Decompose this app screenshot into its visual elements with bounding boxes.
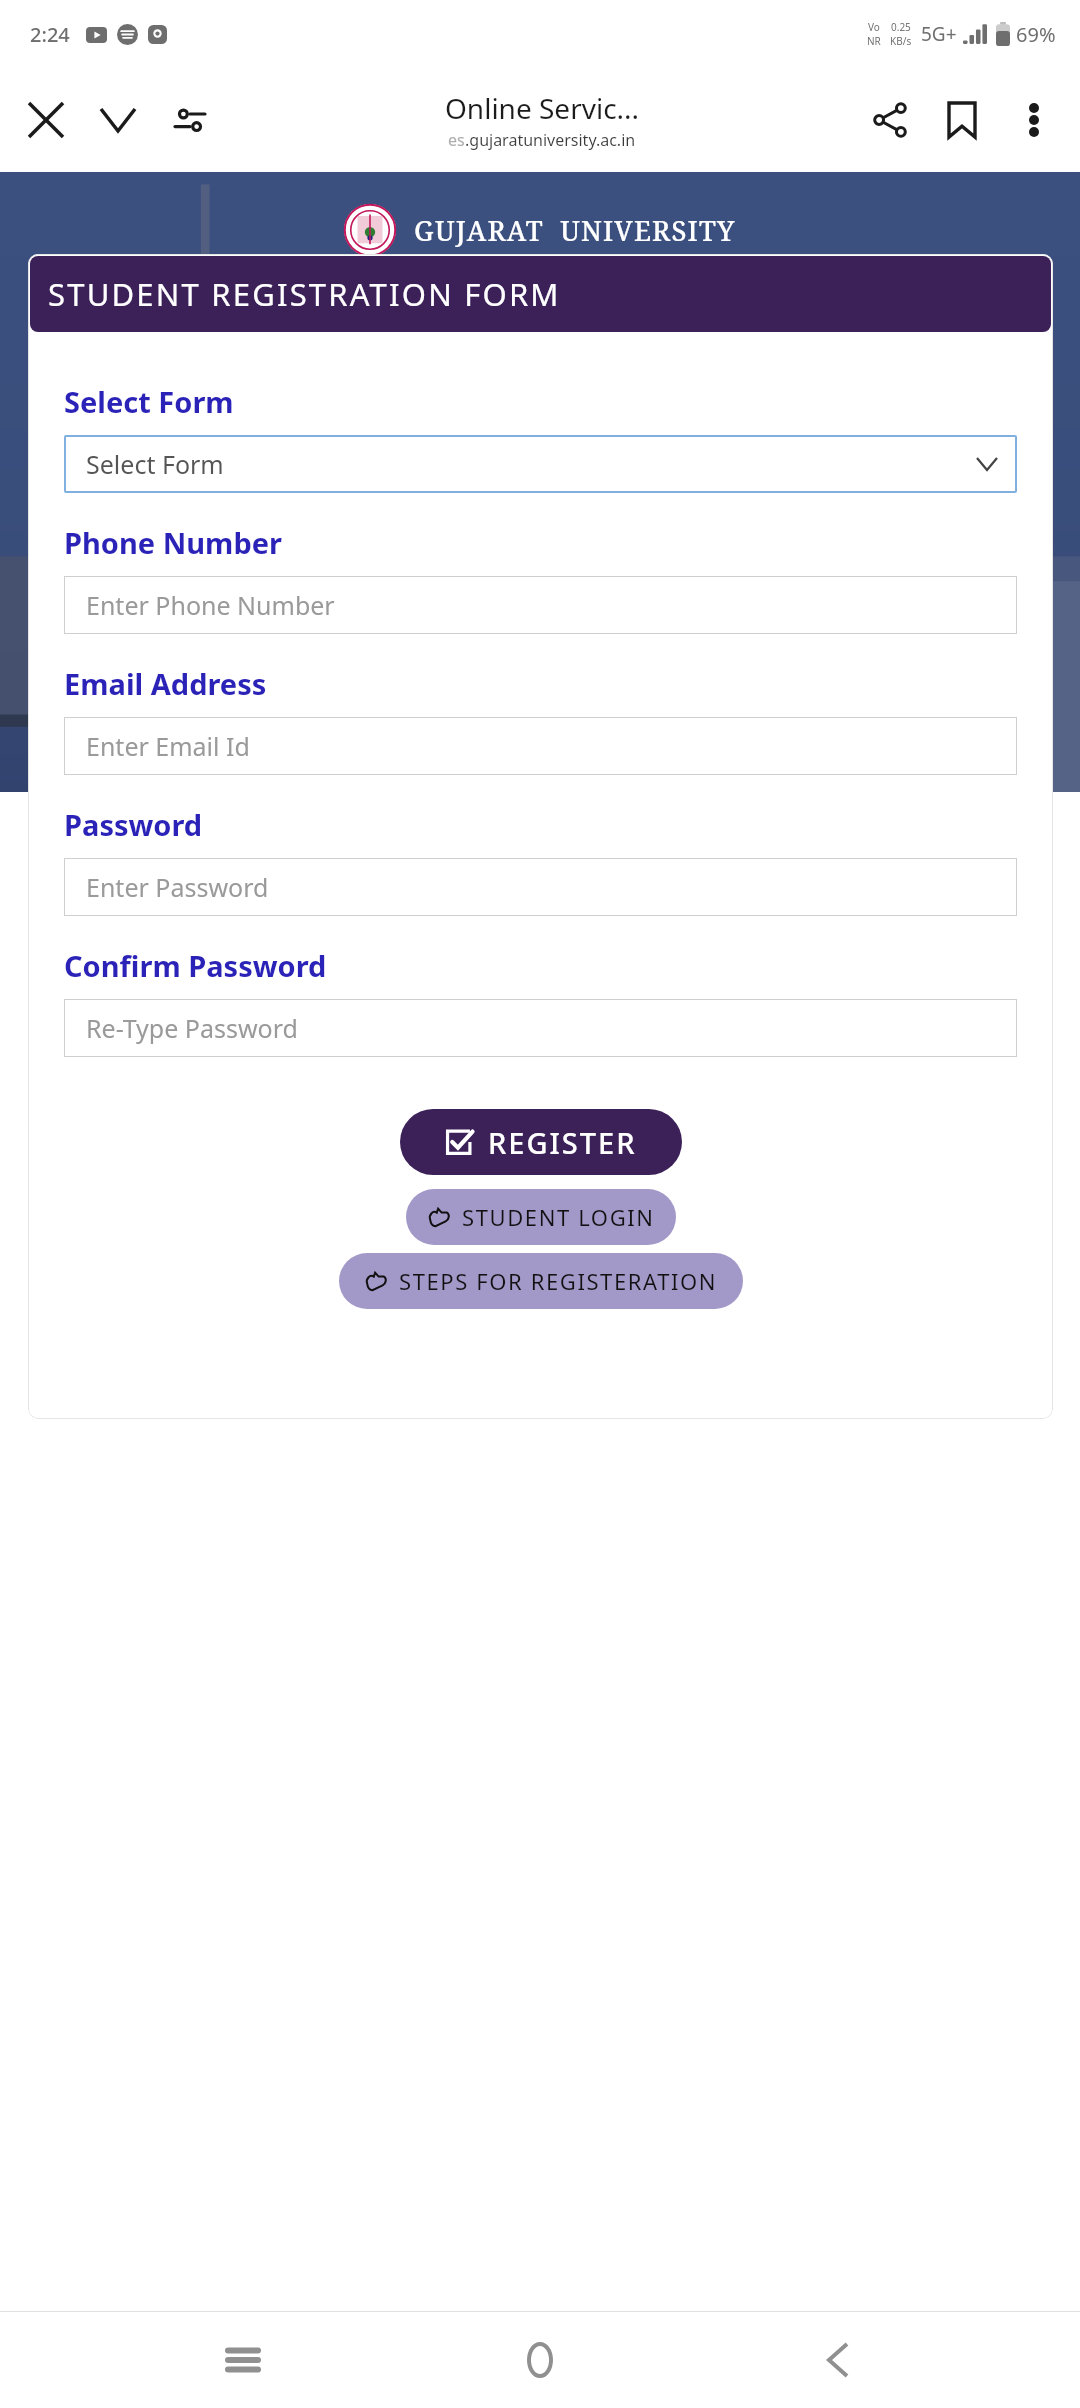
button[interactable]: Site settings bbox=[154, 75, 226, 165]
button[interactable]: STEPS FOR REGISTERATION bbox=[339, 1253, 743, 1309]
button[interactable]: STUDENT LOGIN bbox=[406, 1189, 676, 1245]
button[interactable]: Share bbox=[854, 75, 926, 165]
button[interactable]: Collapse bbox=[82, 75, 154, 165]
staticText: STUDENT REGISTRATION FORM bbox=[48, 273, 561, 315]
staticText: STUDENT LOGIN bbox=[462, 1202, 655, 1232]
button[interactable]: More options bbox=[998, 75, 1070, 165]
button[interactable]: Recent apps bbox=[188, 2312, 298, 2408]
staticText: Re-Type Password bbox=[86, 1011, 298, 1045]
staticText: NR bbox=[867, 34, 881, 48]
staticText: Enter Password bbox=[86, 870, 269, 904]
staticText: Password bbox=[64, 805, 203, 844]
staticText: Online Servic... bbox=[445, 89, 640, 127]
staticText: REGISTER bbox=[488, 1123, 637, 1162]
button[interactable]: Home bbox=[485, 2312, 595, 2408]
button[interactable]: Enter Password bbox=[64, 858, 1017, 916]
staticText: Confirm Password bbox=[64, 946, 327, 985]
button[interactable]: Enter Email Id bbox=[64, 717, 1017, 775]
staticText: .gujaratuniversity.ac.in bbox=[465, 129, 636, 151]
staticText: 2:24 bbox=[30, 21, 70, 48]
staticText: STEPS FOR REGISTERATION bbox=[399, 1266, 718, 1296]
staticText: 5G+ bbox=[921, 21, 957, 47]
staticText: Phone Number bbox=[64, 523, 282, 562]
button[interactable]: Back bbox=[783, 2312, 893, 2408]
staticText: Select Form bbox=[64, 382, 234, 421]
staticText: 69% bbox=[1016, 21, 1056, 48]
button[interactable]: REGISTER bbox=[400, 1109, 682, 1175]
staticText: KB/s bbox=[890, 34, 912, 48]
button[interactable]: Close bbox=[10, 75, 82, 165]
staticText: Vo bbox=[868, 20, 880, 34]
button[interactable]: Select Form bbox=[64, 435, 1017, 493]
staticText: es bbox=[448, 129, 465, 151]
staticText: 0.25 bbox=[891, 20, 911, 34]
staticText: GUJARAT UNIVERSITY bbox=[414, 212, 736, 249]
button[interactable]: Enter Phone Number bbox=[64, 576, 1017, 634]
staticText: Enter Email Id bbox=[86, 729, 250, 763]
button[interactable]: Bookmark bbox=[926, 75, 998, 165]
staticText: Select Form bbox=[86, 447, 224, 481]
staticText: Email Address bbox=[64, 664, 267, 703]
button[interactable]: Re-Type Password bbox=[64, 999, 1017, 1057]
staticText: Enter Phone Number bbox=[86, 588, 335, 622]
